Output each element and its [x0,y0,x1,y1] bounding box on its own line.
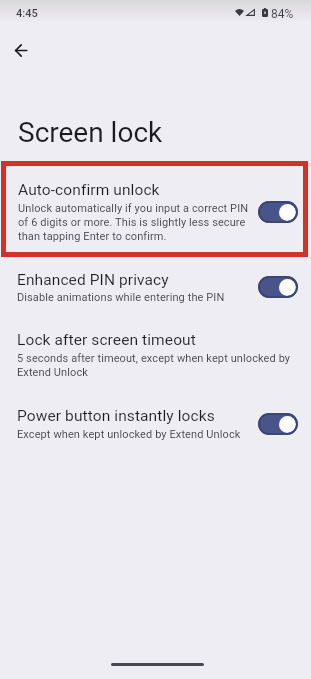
staticText: Screen lock [18,116,163,149]
button[interactable] [258,201,298,223]
button[interactable]: Auto-confirm unlock [1,161,308,257]
button[interactable]: Lock after screen timeout [0,325,311,383]
staticText: Auto-confirm unlock [18,181,160,199]
staticText: 5 seconds after timeout, except when kep… [17,352,291,379]
staticText: Unlock automatically if you input a corr… [18,202,249,243]
button[interactable]: Power button instantly locks [0,399,311,449]
staticText: 4:45 [16,7,38,20]
button[interactable] [258,276,298,298]
staticText: Enhanced PIN privacy [17,271,169,289]
staticText: 84% [271,7,294,21]
staticText: Power button instantly locks [17,407,215,425]
button[interactable] [7,36,35,64]
button[interactable] [258,413,298,435]
staticText: Lock after screen timeout [17,331,196,349]
staticText: Disable animations while entering the PI… [17,291,225,304]
button[interactable]: Enhanced PIN privacy [0,263,311,313]
staticText: Except when kept unlocked by Extend Unlo… [17,428,241,441]
